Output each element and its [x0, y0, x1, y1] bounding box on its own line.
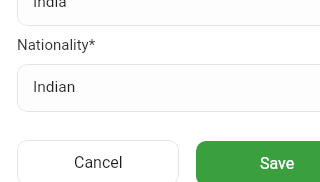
staticText: Save: [260, 154, 295, 173]
staticText: Cancel: [74, 153, 123, 172]
staticText: Nationality*: [17, 36, 96, 54]
button[interactable]: Indian: [17, 64, 320, 112]
staticText: India: [33, 0, 67, 11]
staticText: Indian: [33, 78, 76, 96]
button[interactable]: Cancel: [17, 140, 179, 182]
button[interactable]: Save: [196, 141, 320, 182]
button[interactable]: India: [17, 0, 320, 26]
